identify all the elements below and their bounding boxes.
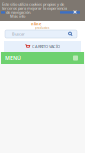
staticText: MiTiendaOnline [31,16,53,26]
staticText: Más info [10,13,25,19]
button[interactable]: Inicio [31,21,53,27]
button[interactable]: Cerrar [72,9,77,14]
button[interactable]: MENÚ [1,52,21,64]
staticText: Este sitio utiliza cookies propias y de [2,1,64,7]
button[interactable]: CARRITO VACÍO [4,41,81,52]
staticText: MENÚ [5,54,21,62]
staticText: Buscar [12,31,25,37]
staticText: CARRITO VACÍO [32,44,60,49]
button[interactable]: Más información [1,11,5,14]
staticText: terceros para mejorar la experiencia [2,5,67,11]
staticText: productos naturales [35,26,49,33]
button[interactable]: Abrir menú [73,52,84,64]
button[interactable]: Aceptar [60,11,80,14]
staticText: de navegación. [6,9,31,15]
button[interactable]: Buscar [68,31,77,36]
